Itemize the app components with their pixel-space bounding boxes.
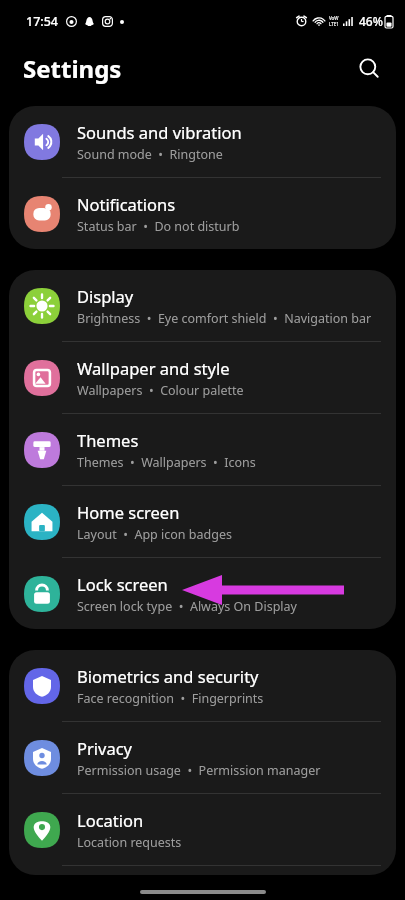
button[interactable]: Home screen	[9, 486, 396, 557]
staticText: Status bar • Do not disturb	[77, 218, 240, 235]
staticText: Sounds and vibration	[77, 121, 242, 143]
button[interactable]: Location	[9, 794, 396, 865]
button[interactable]: Biometrics and security	[9, 650, 396, 721]
staticText: Screen lock type • Always On Display	[77, 598, 297, 615]
staticText: Location	[77, 809, 144, 831]
staticText: Location requests	[77, 834, 182, 851]
button[interactable]: Privacy	[9, 722, 396, 793]
staticText: Brightness • Eye comfort shield • Naviga…	[77, 310, 372, 327]
button[interactable]: Search	[351, 50, 387, 86]
staticText: LTE1	[329, 21, 339, 27]
button[interactable]: Themes	[9, 414, 396, 485]
staticText: Themes • Wallpapers • Icons	[77, 454, 256, 471]
staticText: Lock screen	[77, 573, 168, 595]
button[interactable]: Sounds and vibration	[9, 106, 396, 177]
staticText: Display	[77, 285, 134, 307]
button[interactable]: Display	[9, 270, 396, 341]
staticText: Wallpaper and style	[77, 357, 230, 379]
staticText: Settings	[23, 52, 122, 85]
staticText: Layout • App icon badges	[77, 526, 232, 543]
staticText: Themes	[77, 429, 139, 451]
staticText: Permission usage • Permission manager	[77, 762, 321, 779]
staticText: VoW	[329, 15, 339, 21]
staticText: Sound mode • Ringtone	[77, 146, 223, 163]
button[interactable]: Wallpaper and style	[9, 342, 396, 413]
staticText: Biometrics and security	[77, 665, 259, 687]
staticText: 46%	[359, 13, 383, 29]
staticText: Privacy	[77, 737, 133, 759]
button[interactable]: Notifications	[9, 178, 396, 249]
staticText: Home screen	[77, 501, 180, 523]
staticText: 17:54	[26, 13, 59, 30]
staticText: Notifications	[77, 193, 176, 215]
staticText: Wallpapers • Colour palette	[77, 382, 244, 399]
staticText: Face recognition • Fingerprints	[77, 690, 264, 707]
button[interactable]: Lock screen	[9, 558, 396, 629]
